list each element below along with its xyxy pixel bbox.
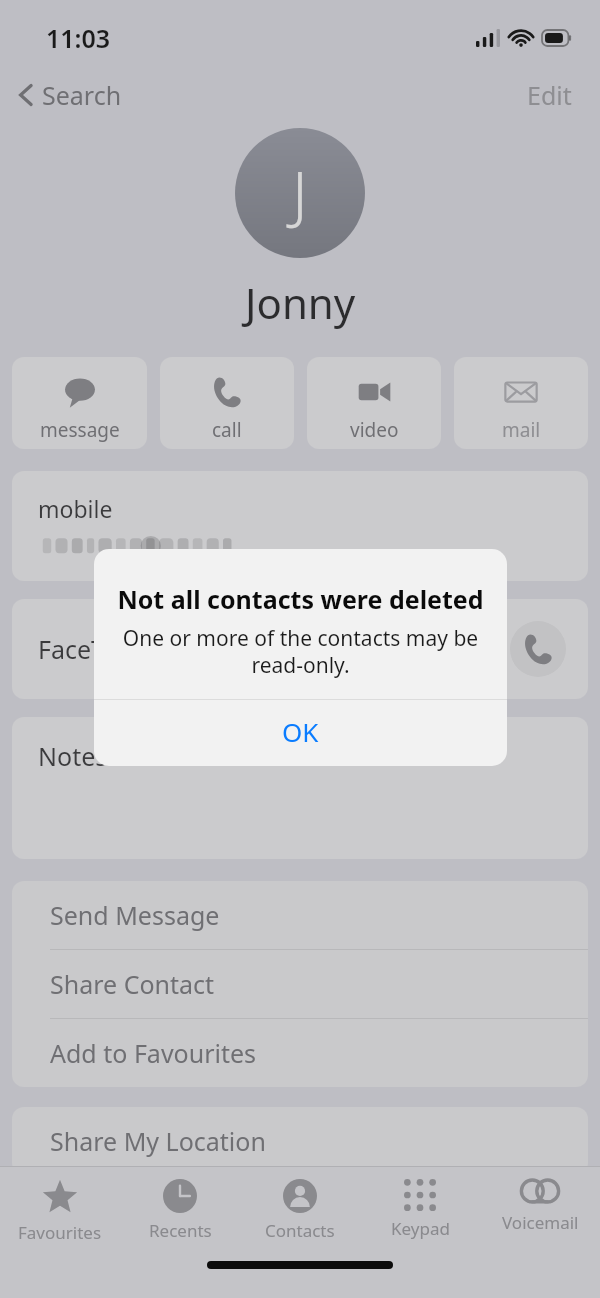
staticText: Search xyxy=(42,78,122,112)
button[interactable]: video xyxy=(307,357,441,449)
staticText: mail xyxy=(502,417,541,443)
staticText: Add to Favourites xyxy=(50,1036,257,1070)
button[interactable]: Recents xyxy=(120,1167,240,1253)
staticText: Favourites xyxy=(18,1221,102,1244)
staticText: Edit xyxy=(527,78,572,112)
button[interactable]: call xyxy=(160,357,294,449)
staticText: Send Message xyxy=(50,898,220,932)
staticText: Notes xyxy=(38,739,108,773)
staticText: Recents xyxy=(149,1219,212,1242)
staticText: Contacts xyxy=(265,1219,335,1242)
staticText: message xyxy=(40,417,120,443)
button[interactable]: Edit xyxy=(521,74,578,116)
staticText: call xyxy=(212,417,242,443)
button[interactable]: Share My Location xyxy=(12,1107,588,1175)
button[interactable]: Search xyxy=(14,74,126,116)
staticText: J xyxy=(292,151,308,235)
staticText: FaceTime xyxy=(38,632,149,666)
button[interactable]: OK xyxy=(94,700,507,766)
button[interactable]: mobile xyxy=(12,471,588,581)
staticText: Voicemail xyxy=(502,1211,579,1234)
staticText: Share My Location xyxy=(50,1124,266,1158)
staticText: One or more of the contacts may be read-… xyxy=(114,624,487,679)
staticText: Keypad xyxy=(391,1217,450,1240)
staticText: video xyxy=(350,417,399,443)
staticText: Not all contacts were deleted xyxy=(117,582,484,616)
staticText: OK xyxy=(282,714,319,749)
button[interactable]: Voicemail xyxy=(480,1167,600,1253)
button[interactable]: mail xyxy=(454,357,588,449)
button[interactable]: Notes xyxy=(12,717,588,859)
button[interactable]: Favourites xyxy=(0,1167,120,1253)
button[interactable]: Send Message xyxy=(12,881,588,949)
staticText: mobile xyxy=(38,493,113,524)
button[interactable]: Keypad xyxy=(360,1167,480,1253)
button[interactable]: FaceTime audio call xyxy=(510,621,566,677)
button[interactable]: Add to Favourites xyxy=(12,1019,588,1087)
button[interactable]: Contacts xyxy=(240,1167,360,1253)
button[interactable]: message xyxy=(12,357,147,449)
button[interactable]: FaceTime xyxy=(12,599,588,699)
staticText: Jonny xyxy=(245,274,356,331)
button[interactable]: Share Contact xyxy=(12,950,588,1018)
staticText: Share Contact xyxy=(50,967,215,1001)
staticText: 11:03 xyxy=(46,21,111,55)
